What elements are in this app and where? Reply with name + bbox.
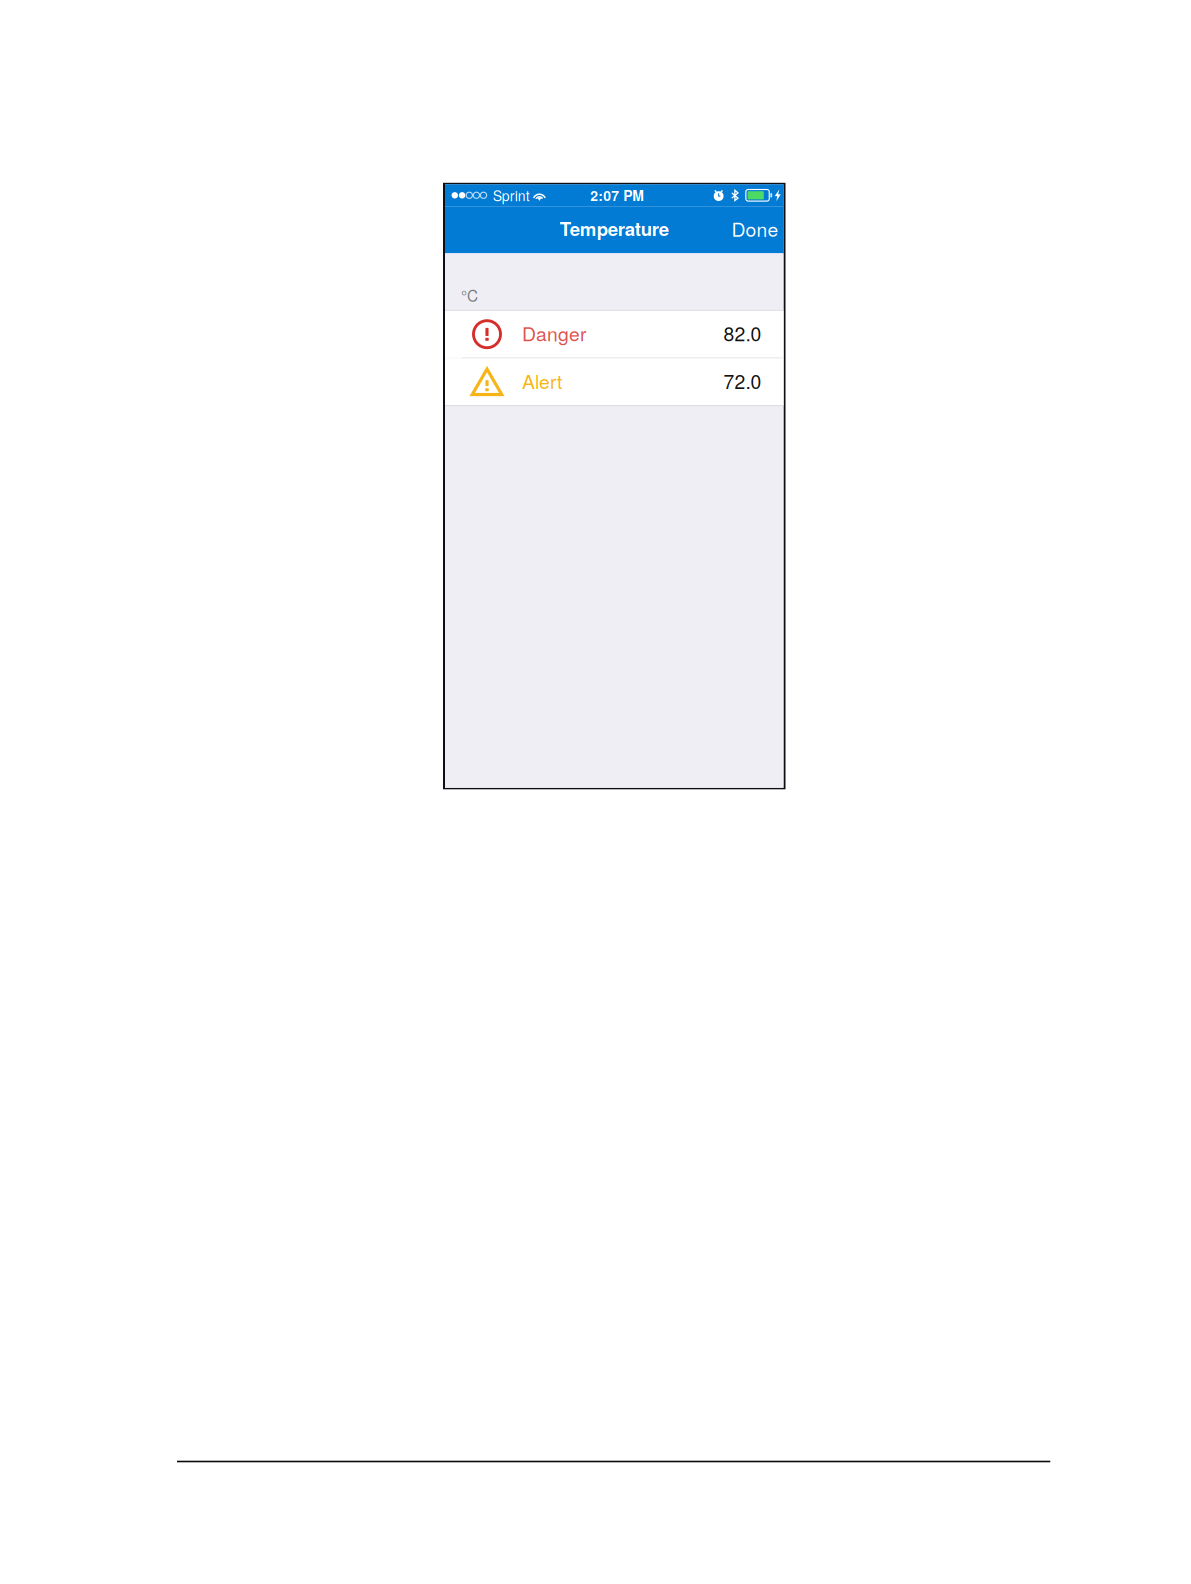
staticText: Temperature xyxy=(560,215,669,242)
staticText: Sprint xyxy=(493,185,530,205)
button[interactable]: Alert xyxy=(445,358,783,405)
staticText: 2:07 PM xyxy=(590,185,644,205)
button[interactable]: Done xyxy=(715,206,783,254)
staticText: 72.0 xyxy=(723,367,761,394)
staticText: Alert xyxy=(522,367,562,394)
staticText: Danger xyxy=(522,319,586,347)
staticText: °C xyxy=(461,284,478,306)
staticText: 82.0 xyxy=(723,319,761,347)
staticText: Done xyxy=(731,214,778,242)
button[interactable]: Danger xyxy=(445,311,783,357)
